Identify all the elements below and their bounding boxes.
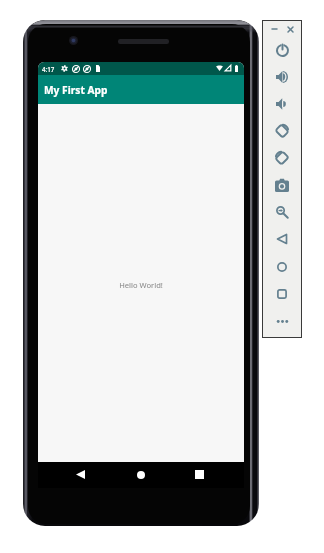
- button[interactable]: Rotate right: [269, 145, 295, 171]
- staticText: 4:17: [42, 65, 55, 73]
- button[interactable]: Overview: [269, 281, 295, 307]
- button[interactable]: More options: [269, 308, 295, 334]
- button[interactable]: Take screenshot: [269, 172, 295, 198]
- button[interactable]: Volume down: [269, 91, 295, 117]
- button[interactable]: Power: [269, 37, 295, 63]
- button[interactable]: Volume up: [269, 64, 295, 90]
- button[interactable]: Minimize: [268, 23, 280, 35]
- button[interactable]: Back: [269, 226, 295, 252]
- staticText: My First App: [44, 83, 108, 97]
- staticText: Hello World!: [119, 280, 163, 290]
- button[interactable]: Recents: [191, 466, 208, 483]
- button[interactable]: Close: [284, 23, 296, 35]
- button[interactable]: My First App: [38, 75, 244, 104]
- button[interactable]: Rotate left: [269, 118, 295, 144]
- button[interactable]: Home: [132, 466, 149, 483]
- button[interactable]: Zoom: [269, 199, 295, 225]
- button[interactable]: Back: [72, 466, 89, 483]
- button[interactable]: Home: [269, 254, 295, 280]
